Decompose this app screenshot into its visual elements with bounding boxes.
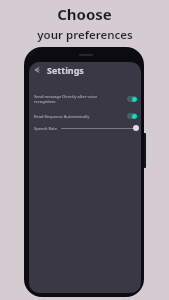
button[interactable]: Back <box>32 65 42 75</box>
button[interactable]: Speech Rate <box>29 122 141 134</box>
staticText: Read Response Automatically <box>34 114 90 119</box>
staticText: your preferences <box>37 27 133 43</box>
staticText: Settings <box>47 64 84 76</box>
staticText: Speech Rate <box>34 126 58 131</box>
button[interactable]: Send message directly after voice recogn… <box>127 96 137 102</box>
button[interactable]: Read Response Automatically <box>29 110 141 122</box>
button[interactable]: Back <box>29 63 141 77</box>
button[interactable]: Read response automatically <box>127 113 137 119</box>
staticText: Send message Directly after voice recogn… <box>34 94 98 104</box>
button[interactable]: Send message Directly after voice recogn… <box>29 91 141 107</box>
staticText: Choose <box>57 4 112 24</box>
